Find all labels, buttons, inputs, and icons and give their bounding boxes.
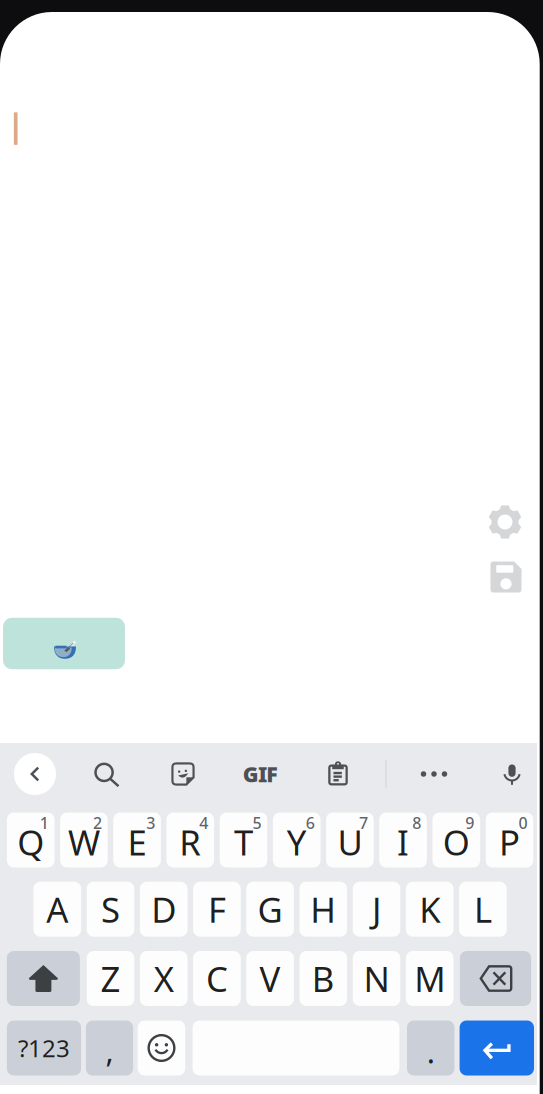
button[interactable]: F	[193, 882, 241, 937]
button[interactable]: T	[220, 812, 267, 867]
staticText: J	[372, 886, 381, 932]
button[interactable]: Settings	[488, 505, 522, 539]
button[interactable]: V	[246, 951, 294, 1006]
staticText: 5	[253, 812, 262, 833]
button[interactable]: ?123	[7, 1020, 81, 1075]
staticText: 7	[359, 812, 368, 833]
staticText: .	[427, 1031, 435, 1072]
staticText: M	[414, 955, 445, 1001]
staticText: ?123	[18, 1032, 70, 1064]
button[interactable]: L	[459, 882, 507, 937]
button[interactable]: More options	[421, 761, 447, 787]
button[interactable]: ,	[86, 1020, 133, 1075]
staticText: I	[397, 819, 409, 865]
button[interactable]: U	[326, 812, 374, 867]
button[interactable]: O	[432, 812, 480, 867]
staticText: D	[151, 886, 176, 932]
button[interactable]: J	[353, 882, 400, 937]
button[interactable]: Backspace	[460, 951, 531, 1006]
staticText: X	[154, 955, 174, 1001]
staticText: T	[234, 819, 253, 865]
staticText: U	[337, 819, 362, 865]
staticText: ,	[105, 1030, 113, 1071]
staticText: 6	[306, 812, 315, 833]
staticText: H	[310, 886, 336, 932]
button[interactable]: H	[299, 882, 347, 937]
button[interactable]: N	[353, 951, 400, 1006]
button[interactable]: E	[113, 812, 161, 867]
staticText: 8	[412, 812, 421, 833]
staticText: 2	[93, 812, 102, 833]
staticText: GIF	[243, 760, 277, 788]
button[interactable]: Clipboard	[325, 761, 350, 786]
button[interactable]: Z	[87, 951, 134, 1006]
button[interactable]: D	[140, 882, 187, 937]
button[interactable]: M	[406, 951, 453, 1006]
button[interactable]	[3, 618, 125, 669]
staticText: Q	[17, 819, 44, 865]
button[interactable]: S	[87, 882, 134, 937]
staticText: L	[474, 886, 492, 932]
button[interactable]: C	[193, 951, 241, 1006]
button[interactable]: .	[407, 1020, 454, 1075]
button[interactable]: I	[379, 812, 427, 867]
button[interactable]: G	[246, 882, 294, 937]
button[interactable]: Back	[14, 753, 56, 795]
button[interactable]: Emoji	[138, 1020, 185, 1075]
staticText: O	[443, 819, 470, 865]
staticText: 0	[519, 812, 528, 833]
staticText: Z	[100, 955, 120, 1001]
button[interactable]: Voice input	[499, 761, 524, 786]
staticText: W	[68, 819, 100, 865]
button[interactable]: R	[166, 812, 214, 867]
button[interactable]: Q	[7, 812, 54, 867]
staticText: C	[206, 955, 228, 1001]
staticText: F	[208, 886, 226, 932]
staticText: G	[258, 886, 283, 932]
staticText: N	[363, 955, 389, 1001]
button[interactable]: GIF	[243, 760, 277, 788]
staticText: Y	[287, 819, 307, 865]
button[interactable]: Search	[94, 762, 120, 788]
staticText: V	[260, 955, 281, 1001]
button[interactable]: Y	[273, 812, 320, 867]
staticText: K	[419, 886, 440, 932]
button[interactable]: Stickers	[170, 761, 195, 786]
button[interactable]: Enter	[460, 1020, 534, 1075]
button[interactable]: K	[406, 882, 453, 937]
staticText: A	[46, 886, 68, 932]
button[interactable]: Save	[490, 561, 521, 592]
staticText: S	[101, 886, 120, 932]
staticText: B	[312, 955, 335, 1001]
staticText: 4	[199, 812, 208, 833]
button[interactable]: B	[299, 951, 347, 1006]
button[interactable]: W	[60, 812, 108, 867]
staticText: P	[499, 819, 520, 865]
button[interactable]: P	[486, 812, 533, 867]
button[interactable]: X	[140, 951, 187, 1006]
button[interactable]: Shift	[7, 951, 80, 1006]
staticText: 3	[146, 812, 155, 833]
staticText: E	[128, 819, 147, 865]
button[interactable]: A	[33, 882, 81, 937]
staticText: 9	[465, 812, 474, 833]
staticText: R	[179, 819, 201, 865]
staticText: 1	[40, 812, 49, 833]
